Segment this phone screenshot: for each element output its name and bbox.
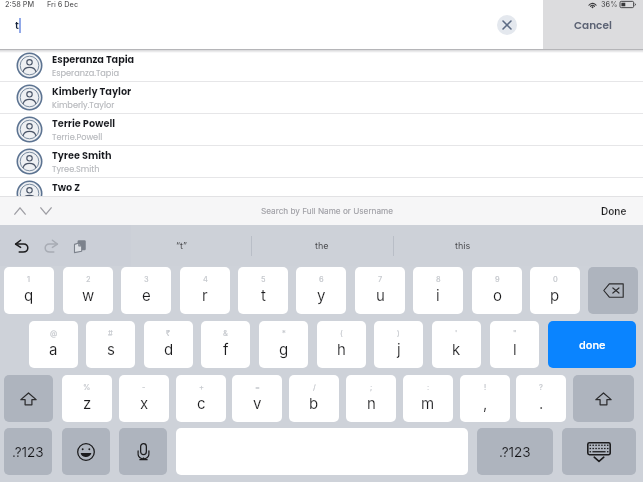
staticText: 2 xyxy=(86,275,91,284)
staticText: 5 xyxy=(261,275,266,284)
button[interactable]: ( xyxy=(317,321,366,368)
staticText: s xyxy=(107,340,115,358)
button[interactable]: ' xyxy=(432,321,481,368)
button[interactable]: 7 xyxy=(355,267,405,314)
staticText: ) xyxy=(397,329,400,338)
staticText: Fri 6 Dec xyxy=(47,0,79,9)
staticText: Search by Full Name or Username xyxy=(261,206,393,216)
button[interactable]: Cancel xyxy=(543,13,643,49)
staticText: d xyxy=(164,340,174,358)
staticText: + xyxy=(199,383,204,392)
staticText: 0 xyxy=(553,275,558,284)
staticText: i xyxy=(436,286,440,304)
button[interactable]: this xyxy=(393,225,532,266)
button[interactable]: Undo xyxy=(9,233,35,259)
staticText: 9 xyxy=(495,275,500,284)
staticText: Esperanza Tapia xyxy=(52,53,135,67)
staticText: # xyxy=(108,329,113,338)
button[interactable]: Next field xyxy=(34,199,58,223)
button[interactable]: Two Z xyxy=(0,178,643,209)
button[interactable]: Esperanza Tapia xyxy=(0,50,643,81)
staticText: t xyxy=(261,286,266,304)
button[interactable]: Kimberly Taylor xyxy=(0,82,643,113)
staticText: k xyxy=(452,340,461,358)
staticText: t xyxy=(15,18,19,32)
button[interactable]: 0 xyxy=(530,267,580,314)
staticText: , xyxy=(483,394,488,412)
button[interactable]: ? xyxy=(516,375,566,422)
button[interactable]: 1 xyxy=(4,267,54,314)
button[interactable]: / xyxy=(289,375,339,422)
button[interactable]: Redo xyxy=(38,233,64,259)
button[interactable]: the xyxy=(251,225,393,266)
staticText: done xyxy=(579,338,606,351)
staticText: p xyxy=(550,286,560,304)
staticText: h xyxy=(337,340,346,358)
button[interactable]: .?123 xyxy=(477,428,553,475)
staticText: u xyxy=(376,286,385,304)
button[interactable]: Paste xyxy=(67,233,93,259)
button[interactable]: 8 xyxy=(413,267,463,314)
button[interactable]: Emoji xyxy=(62,428,110,475)
button[interactable]: & xyxy=(201,321,250,368)
staticText: ( xyxy=(340,329,343,338)
staticText: 6 xyxy=(319,275,324,284)
staticText: Done xyxy=(601,205,627,217)
staticText: “t” xyxy=(176,240,187,251)
staticText: Tyree Smith xyxy=(52,149,112,163)
button[interactable]: Clear text xyxy=(497,15,517,35)
button[interactable]: Previous field xyxy=(8,199,32,223)
button[interactable]: + xyxy=(176,375,226,422)
staticText: % xyxy=(83,383,91,392)
staticText: / xyxy=(313,383,316,392)
staticText: 2:58 PM xyxy=(5,0,35,9)
button[interactable]: : xyxy=(403,375,453,422)
staticText: the xyxy=(315,240,329,251)
staticText: o xyxy=(493,286,502,304)
button[interactable]: * xyxy=(259,321,308,368)
button[interactable]: @ xyxy=(29,321,78,368)
button[interactable]: ) xyxy=(374,321,423,368)
staticText: @ xyxy=(50,329,58,338)
button[interactable]: - xyxy=(119,375,169,422)
button[interactable]: “t” xyxy=(112,225,251,266)
button[interactable]: Shift xyxy=(573,375,634,422)
staticText: Kimberly.Taylor xyxy=(52,99,115,110)
staticText: ₹ xyxy=(166,329,171,338)
staticText: : xyxy=(427,383,430,392)
button[interactable]: .?123 xyxy=(4,428,52,475)
staticText: Cancel xyxy=(574,18,612,33)
button[interactable]: done xyxy=(548,321,636,368)
button[interactable]: Done xyxy=(596,201,632,221)
button[interactable]: ₹ xyxy=(144,321,193,368)
button[interactable]: ; xyxy=(346,375,396,422)
staticText: e xyxy=(142,286,151,304)
button[interactable]: # xyxy=(86,321,135,368)
staticText: 1 xyxy=(27,275,31,284)
button[interactable]: " xyxy=(490,321,539,368)
button[interactable]: 6 xyxy=(296,267,346,314)
button[interactable]: Dictation xyxy=(119,428,167,475)
button[interactable]: Hide keyboard xyxy=(562,428,636,475)
button[interactable]: 5 xyxy=(238,267,288,314)
button[interactable]: 9 xyxy=(472,267,522,314)
button[interactable]: 3 xyxy=(121,267,171,314)
button[interactable]: Shift xyxy=(4,375,53,422)
button[interactable]: % xyxy=(62,375,112,422)
button[interactable]: = xyxy=(232,375,282,422)
button[interactable]: Backspace xyxy=(588,267,638,314)
staticText: 8 xyxy=(436,275,441,284)
staticText: 4 xyxy=(203,275,208,284)
button[interactable]: Terrie Powell xyxy=(0,114,643,145)
button[interactable]: 2 xyxy=(63,267,113,314)
staticText: l xyxy=(513,340,517,358)
staticText: .?123 xyxy=(499,444,531,460)
button[interactable]: ! xyxy=(460,375,510,422)
button[interactable]: 4 xyxy=(180,267,230,314)
button[interactable]: Tyree Smith xyxy=(0,146,643,177)
staticText: Terrie Powell xyxy=(52,117,116,131)
staticText: 3 xyxy=(144,275,149,284)
staticText: = xyxy=(255,383,260,392)
staticText: Two.Z xyxy=(52,195,75,206)
